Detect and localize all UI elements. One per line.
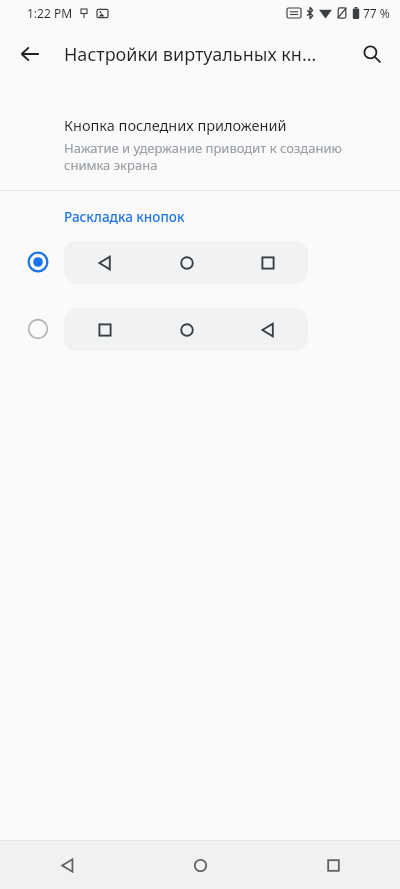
button[interactable]: [0, 240, 400, 284]
button[interactable]: Назад: [10, 34, 50, 74]
staticText: Раскладка кнопок: [64, 208, 185, 226]
button[interactable]: Поиск: [352, 34, 392, 74]
button[interactable]: Последние приложения: [267, 841, 400, 889]
staticText: 77 %: [363, 5, 390, 21]
staticText: 1:22 PM: [27, 5, 73, 21]
button[interactable]: [0, 307, 400, 351]
button[interactable]: Главный экран: [134, 841, 267, 889]
staticText: Настройки виртуальных кн…: [64, 42, 317, 67]
staticText: Кнопка последних приложений: [64, 115, 287, 135]
staticText: Нажатие и удержание приводит к созданию …: [64, 139, 376, 174]
button[interactable]: Назад: [0, 841, 134, 889]
